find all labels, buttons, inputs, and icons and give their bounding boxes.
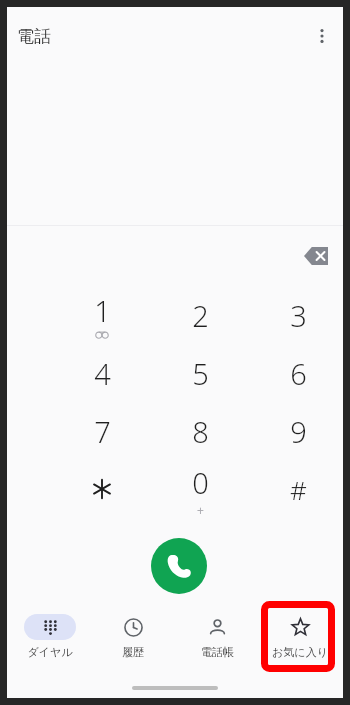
staticText: 5 <box>192 354 209 393</box>
staticText: + <box>197 502 204 515</box>
staticText: お気に入り <box>272 645 328 659</box>
button[interactable]: 4 <box>70 345 134 399</box>
staticText: 9 <box>290 412 307 451</box>
staticText: 7 <box>94 412 111 451</box>
button[interactable]: 1 <box>70 287 134 341</box>
button[interactable]: 9 <box>266 403 330 457</box>
staticText: 3 <box>290 296 307 335</box>
button[interactable]: ダイヤル <box>10 606 90 659</box>
staticText: 1 <box>94 291 111 330</box>
button[interactable]: 3 <box>266 287 330 341</box>
button[interactable]: 電話帳 <box>177 606 257 659</box>
staticText: 8 <box>192 412 209 451</box>
button[interactable]: 0 <box>168 461 232 515</box>
button[interactable]: Call <box>151 538 207 594</box>
button[interactable]: 6 <box>266 345 330 399</box>
button[interactable]: More options <box>305 19 339 53</box>
staticText: # <box>290 472 307 507</box>
staticText: 2 <box>192 296 209 335</box>
staticText: 電話 <box>17 26 51 47</box>
button[interactable]: 8 <box>168 403 232 457</box>
staticText: 0 <box>192 463 209 502</box>
staticText: ダイヤル <box>27 645 73 659</box>
staticText: 電話帳 <box>201 645 234 659</box>
button[interactable]: 履歴 <box>93 606 173 659</box>
staticText: 6 <box>290 354 307 393</box>
button[interactable] <box>70 461 134 515</box>
button[interactable]: # <box>266 461 330 515</box>
staticText: 4 <box>94 354 111 393</box>
button[interactable]: 2 <box>168 287 232 341</box>
staticText: 履歴 <box>122 645 144 659</box>
button[interactable]: 5 <box>168 345 232 399</box>
button[interactable]: Backspace <box>299 241 335 271</box>
button[interactable]: お気に入り <box>260 606 340 659</box>
button[interactable]: 7 <box>70 403 134 457</box>
